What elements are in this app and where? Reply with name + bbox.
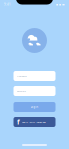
button[interactable]: f (13, 117, 55, 127)
button[interactable]: Username (13, 71, 55, 81)
staticText: f (17, 117, 20, 127)
button[interactable]: Password (13, 86, 55, 96)
staticText: Username (16, 74, 26, 78)
staticText: Login (30, 105, 38, 109)
button[interactable]: Login (13, 102, 55, 112)
staticText: Password (16, 89, 25, 93)
staticText: Login with Facebook (21, 120, 45, 124)
staticText: 9:41 (4, 3, 11, 6)
staticText: ▪ ▪ ▬ (56, 3, 65, 6)
